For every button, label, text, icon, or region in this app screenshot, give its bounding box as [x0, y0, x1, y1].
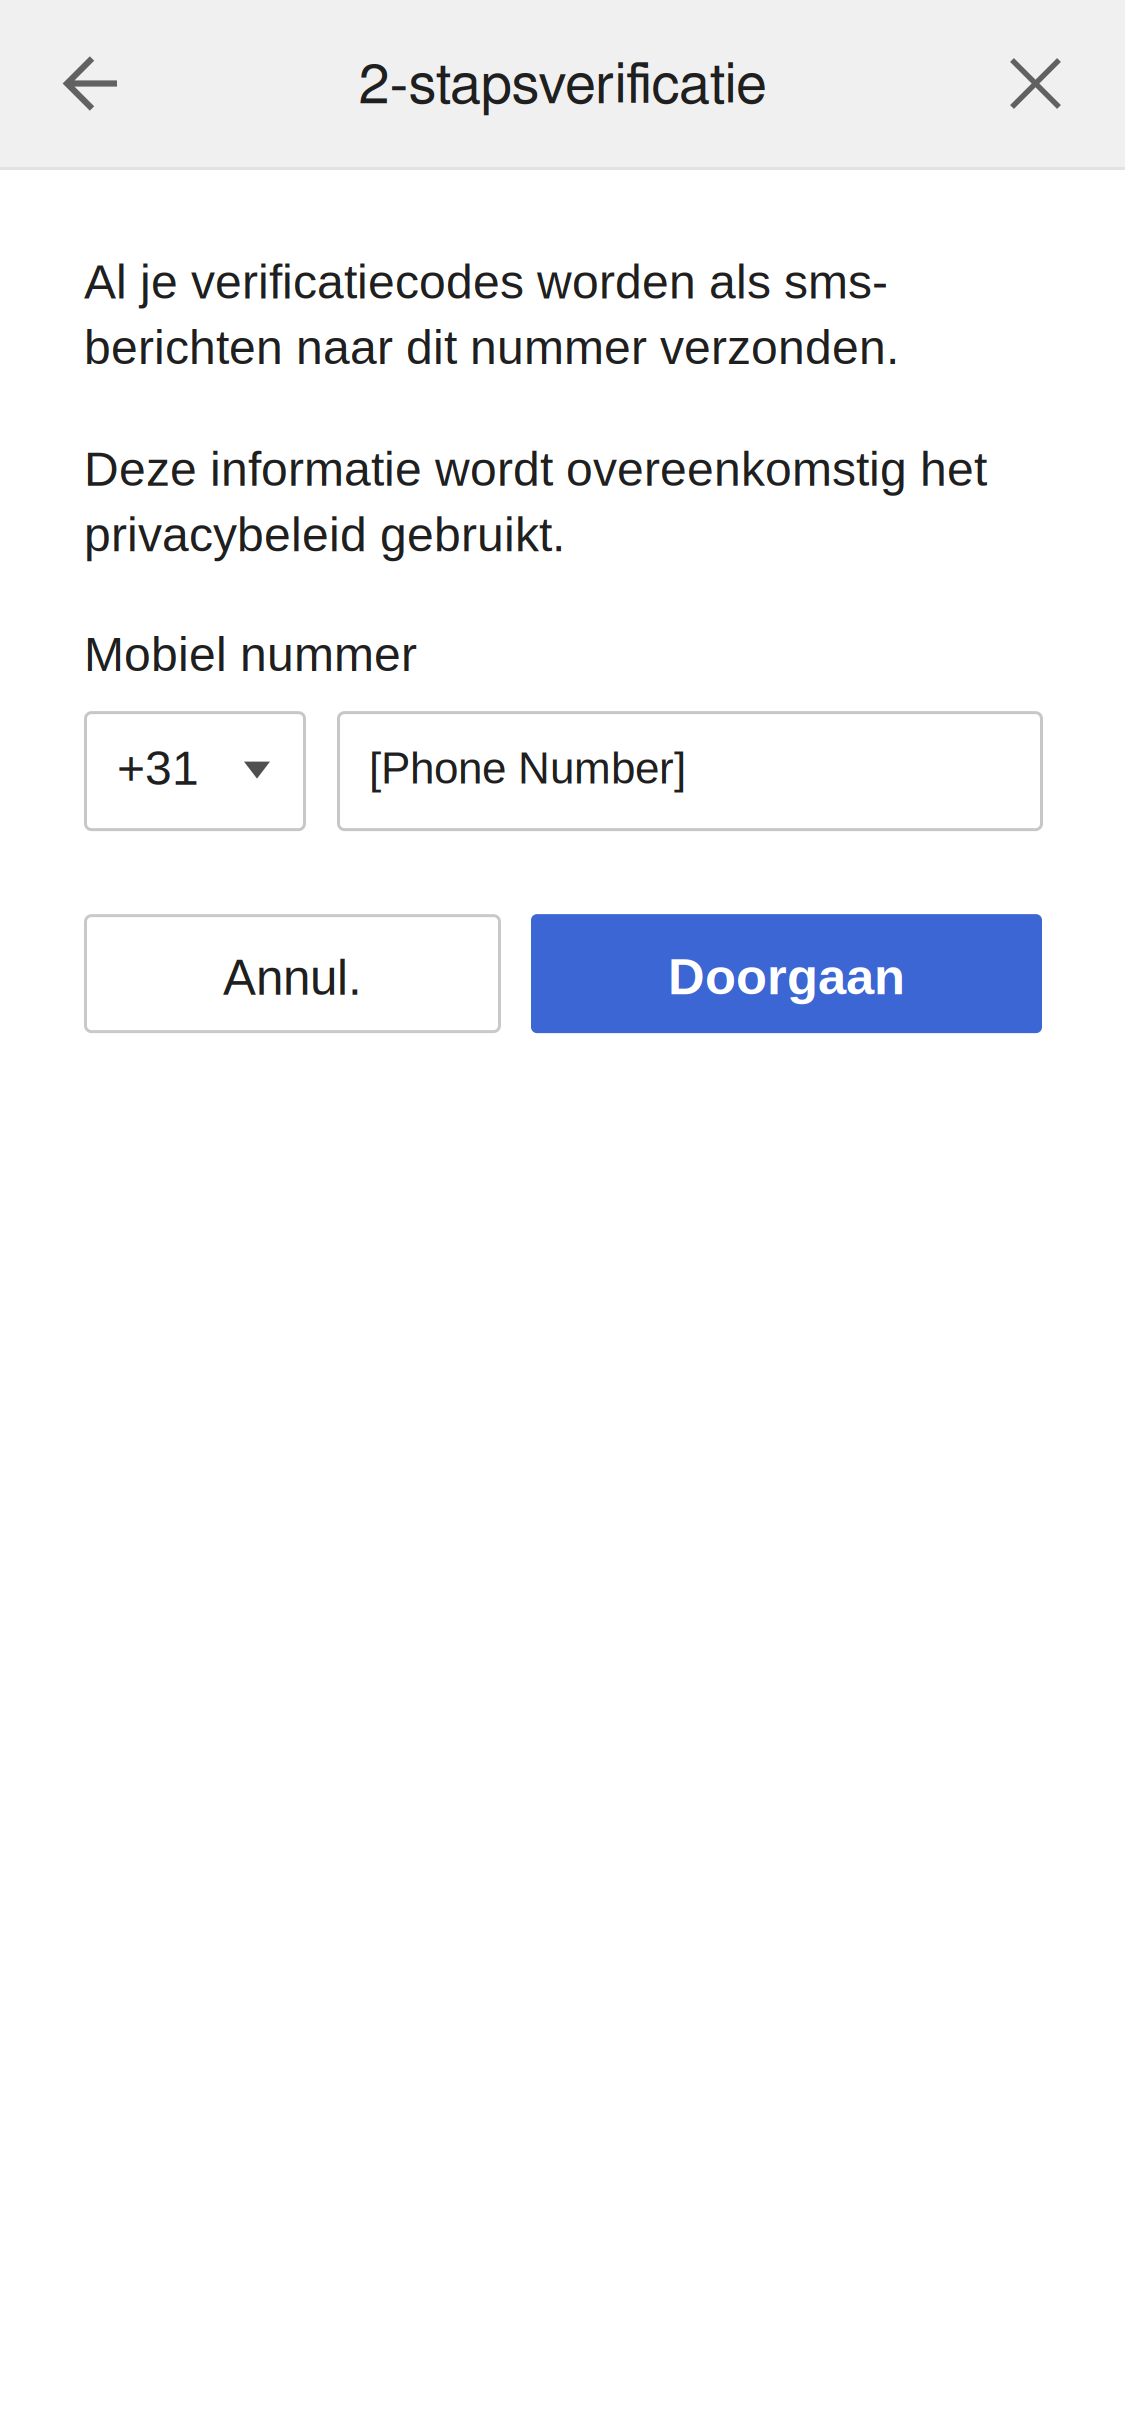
button[interactable]: Annul.	[84, 914, 501, 1033]
staticText: Mobiel nummer	[84, 627, 417, 681]
staticText: Deze informatie wordt overeenkomstig het…	[84, 442, 987, 561]
staticText: +31	[117, 741, 199, 795]
button[interactable]: Telefoonnummer	[337, 711, 1043, 831]
button[interactable]: Doorgaan	[531, 914, 1042, 1033]
staticText: Doorgaan	[668, 948, 905, 1005]
staticText: 2-stapsverificatie	[358, 58, 766, 114]
button[interactable]: Landcode +31	[84, 711, 306, 831]
staticText: Al je verificatiecodes worden als sms- b…	[84, 255, 899, 374]
staticText: Annul.	[223, 950, 362, 1005]
staticText: [Phone Number]	[369, 743, 686, 793]
button[interactable]: Terug	[0, 0, 184, 167]
button[interactable]: Sluiten	[946, 0, 1125, 167]
